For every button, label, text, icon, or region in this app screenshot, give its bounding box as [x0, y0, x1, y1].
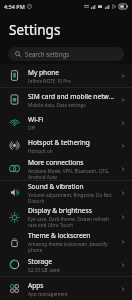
- staticText: Amazing theme lockscreen ,beautify phone: [28, 241, 117, 253]
- staticText: Settings: [9, 21, 61, 39]
- staticText: 62.33 GB used: [28, 267, 60, 273]
- staticText: Search settings: [25, 50, 70, 58]
- other: Open Apps: [120, 286, 126, 292]
- staticText: My phone: [28, 68, 59, 77]
- staticText: SIM card and mobile network: [28, 92, 117, 101]
- staticText: Volume adjustment, Ringtone, Do Not Dist…: [28, 192, 117, 204]
- button[interactable]: SIM card and mobile network: [0, 88, 132, 111]
- staticText: More connections: [28, 158, 84, 167]
- staticText: Airplane Mode, VPN, Bluetooth, OTG, Andr…: [28, 168, 117, 180]
- button[interactable]: Display & brightness: [0, 204, 132, 230]
- staticText: Sound & vibration: [28, 182, 84, 191]
- staticText: Theme & lockscreen: [28, 231, 91, 240]
- staticText: 4:54 PM: [4, 3, 25, 10]
- staticText: Infinix NOTE 10 Pro: [28, 78, 71, 84]
- button[interactable]: Wi-Fi: [0, 111, 132, 134]
- staticText: Off: [28, 125, 35, 131]
- staticText: Eye care, Dark theme, Screen refresh rat…: [28, 216, 117, 228]
- staticText: Hotspot & tethering: [28, 138, 90, 147]
- other: Open Hotspot & tethering: [120, 143, 126, 149]
- other: Open SIM card and mobile network: [120, 97, 126, 103]
- button[interactable]: Sound & vibration: [0, 181, 132, 204]
- staticText: App management: [28, 291, 68, 297]
- staticText: Hotspot on: [28, 148, 53, 154]
- other: Open Theme & lockscreen: [120, 239, 126, 245]
- other: Open Display & brightness: [120, 214, 126, 220]
- staticText: Apps: [28, 281, 44, 290]
- button[interactable]: My phone: [0, 64, 132, 87]
- staticText: Storage: [28, 257, 53, 266]
- staticText: Wi-Fi: [28, 115, 44, 124]
- button[interactable]: Theme & lockscreen: [0, 230, 132, 253]
- button[interactable]: Storage: [0, 253, 132, 276]
- other: Open My phone: [120, 73, 126, 79]
- staticText: Mobile data, Data settings: [28, 102, 86, 108]
- staticText: Display & brightness: [28, 206, 92, 215]
- button[interactable]: Search settings: [8, 47, 124, 61]
- other: Open Storage: [120, 262, 126, 268]
- other: Open More connections: [120, 166, 126, 172]
- button[interactable]: Hotspot & tethering: [0, 134, 132, 157]
- button[interactable]: More connections: [0, 157, 132, 180]
- other: Open Sound & vibration: [120, 190, 126, 196]
- button[interactable]: Apps: [0, 277, 132, 300]
- other: Open Wi-Fi: [120, 120, 126, 126]
